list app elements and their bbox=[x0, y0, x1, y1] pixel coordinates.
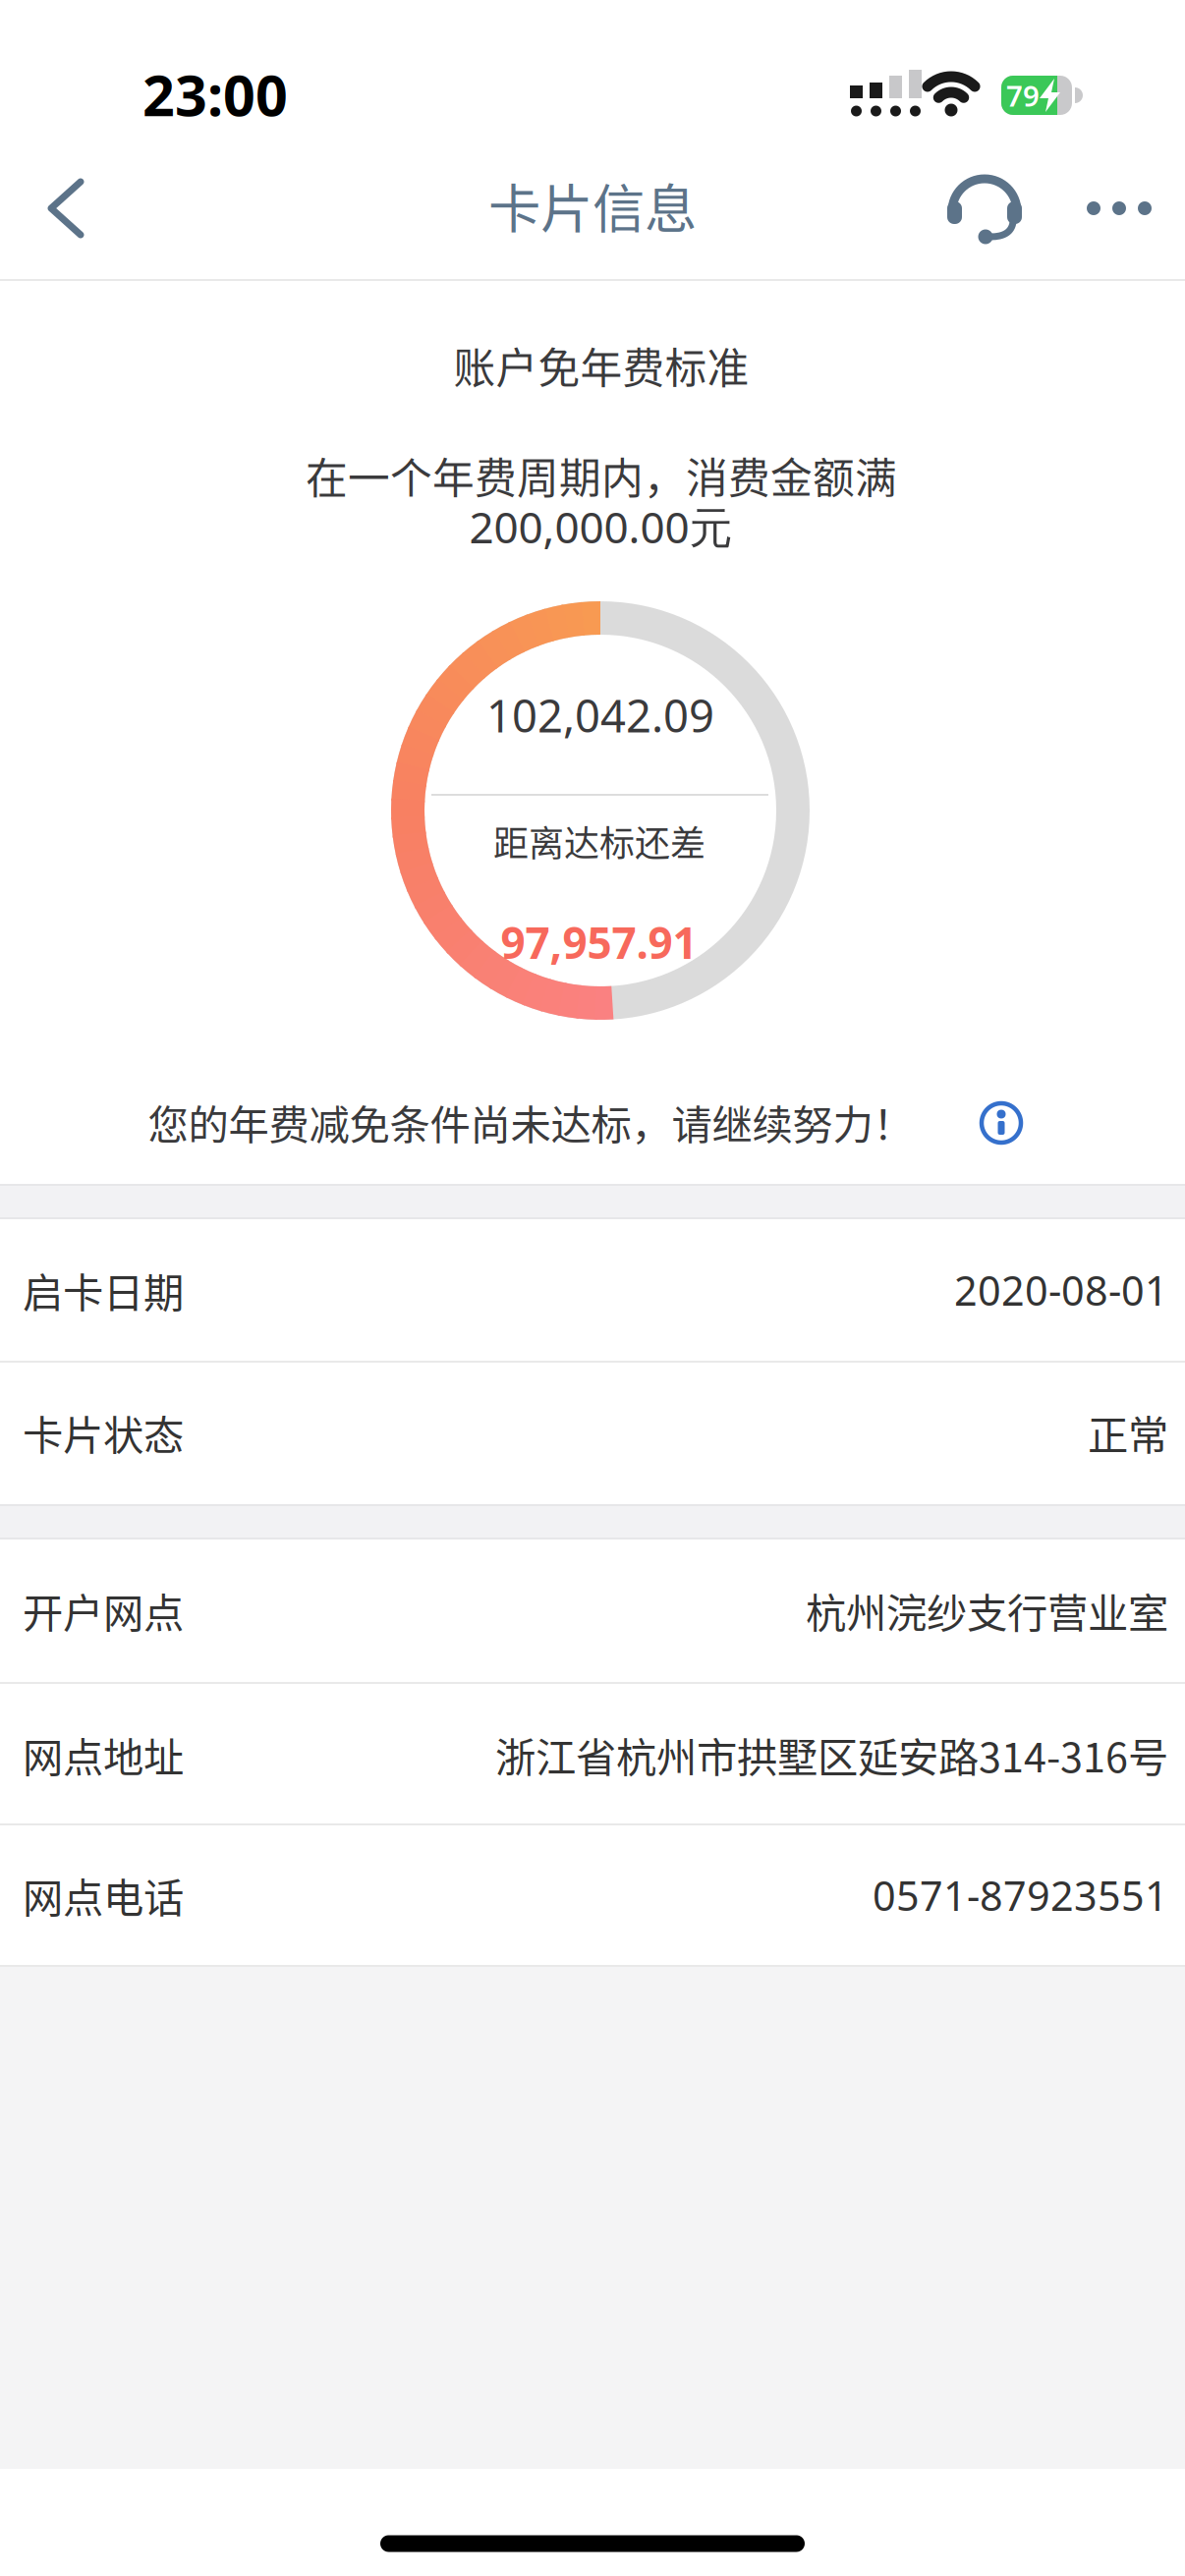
staticText: 23:00 bbox=[142, 57, 288, 132]
staticText: 正常 bbox=[1088, 1403, 1168, 1462]
staticText: 杭州浣纱支行营业室 bbox=[806, 1581, 1168, 1640]
staticText: 距离达标还差 bbox=[493, 815, 705, 867]
staticText: 网点电话 bbox=[23, 1866, 184, 1925]
staticText: 102,042.09 bbox=[486, 686, 714, 745]
staticText: 200,000.00元 bbox=[469, 498, 733, 555]
staticText: 0571-87923551 bbox=[873, 1868, 1168, 1922]
button[interactable]: 客服 bbox=[943, 168, 1026, 251]
button[interactable]: 更多 bbox=[1087, 200, 1152, 216]
staticText: 启卡日期 bbox=[23, 1261, 184, 1319]
staticText: 网点地址 bbox=[23, 1725, 184, 1784]
staticText: 97,957.91 bbox=[501, 913, 697, 971]
staticText: 开户网点 bbox=[23, 1581, 184, 1640]
button[interactable]: 详情 bbox=[978, 1099, 1025, 1147]
staticText: 在一个年费周期内，消费金额满 bbox=[306, 445, 897, 506]
staticText: 账户免年费标准 bbox=[453, 335, 749, 396]
staticText: 卡片状态 bbox=[23, 1403, 184, 1462]
staticText: 2020-08-01 bbox=[954, 1263, 1168, 1317]
staticText: 79 bbox=[1006, 76, 1040, 114]
staticText: 您的年费减免条件尚未达标，请继续努力！ bbox=[148, 1093, 913, 1151]
staticText: 卡片信息 bbox=[488, 167, 697, 243]
button[interactable]: 返回 bbox=[46, 177, 85, 240]
staticText: 浙江省杭州市拱墅区延安路314-316号 bbox=[495, 1725, 1168, 1784]
